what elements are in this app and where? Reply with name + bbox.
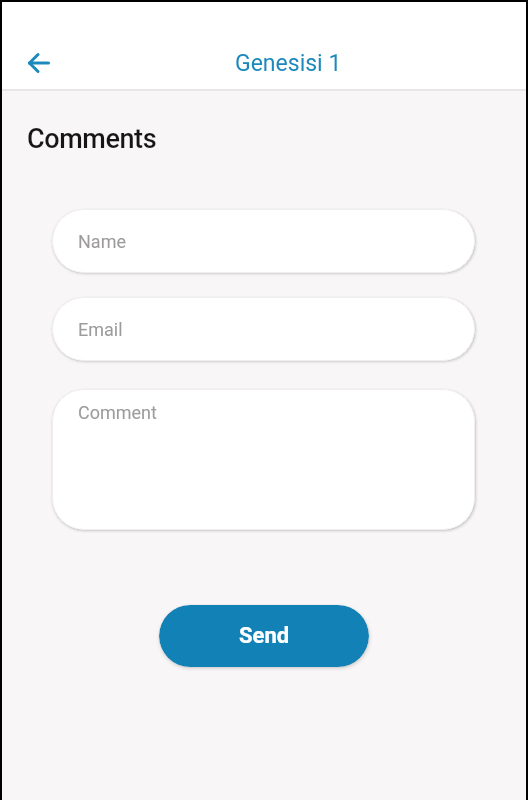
staticText: Genesisi 1	[235, 50, 342, 77]
button[interactable]: Name	[52, 209, 475, 273]
staticText: Comment	[78, 402, 157, 423]
button[interactable]: Email	[52, 297, 475, 361]
staticText: Comments	[27, 123, 157, 155]
button[interactable]: Send	[159, 605, 369, 667]
button[interactable]: Comment	[52, 389, 475, 530]
staticText: Email	[78, 319, 123, 340]
staticText: Name	[78, 231, 126, 252]
staticText: Send	[239, 623, 290, 649]
button[interactable]	[17, 41, 61, 85]
